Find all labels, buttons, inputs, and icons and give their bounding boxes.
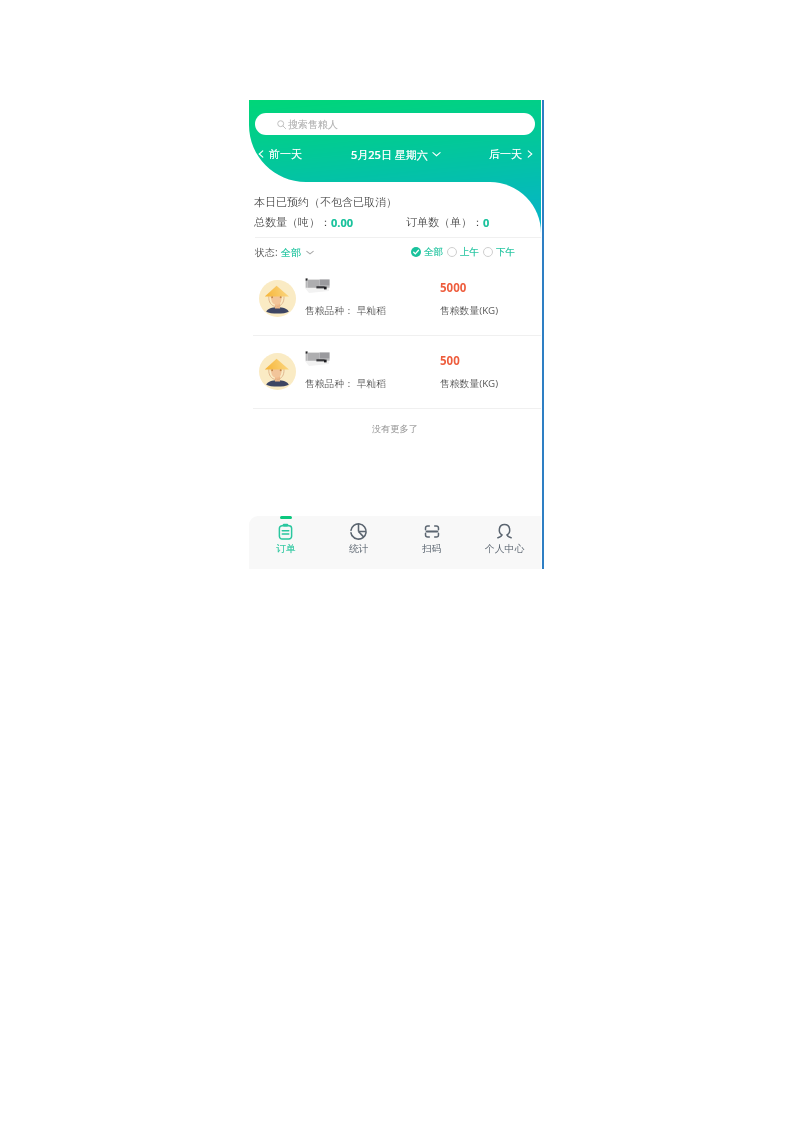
button[interactable]: 上午 (447, 246, 479, 258)
staticText: 扫码 (422, 543, 442, 555)
button[interactable]: 5月25日 星期六 (351, 146, 441, 162)
button[interactable]: 个人中心 (468, 516, 541, 569)
staticText: 订单数（单）： (406, 215, 483, 229)
button[interactable]: 前一天 (258, 146, 302, 162)
button[interactable]: 后一天 (489, 146, 533, 162)
staticText: 本日已预约（不包含已取消） (254, 195, 397, 209)
staticText: 总数量（吨）： (254, 215, 331, 229)
staticText: 5000 (440, 280, 467, 296)
button[interactable]: 下午 (483, 246, 515, 258)
staticText: 订单 (276, 543, 296, 555)
staticText: 上午 (460, 246, 479, 258)
staticText: 个人中心 (485, 543, 525, 555)
staticText: 没有更多了 (249, 423, 541, 435)
button[interactable]: 售粮品种： 早籼稻 (249, 267, 541, 337)
staticText: 售粮品种： 早籼稻 (305, 377, 386, 390)
staticText: 售粮品种： 早籼稻 (305, 304, 386, 317)
staticText: 下午 (496, 246, 515, 258)
button[interactable]: 搜索售粮人 (255, 113, 535, 135)
button[interactable]: 统计 (322, 516, 395, 569)
button[interactable]: 售粮品种： 早籼稻 (249, 340, 541, 410)
staticText: 0 (483, 215, 490, 230)
button[interactable]: 全部 (411, 246, 443, 258)
staticText: 后一天 (489, 147, 522, 161)
staticText: 状态: (255, 245, 278, 259)
staticText: 前一天 (269, 147, 302, 161)
staticText: 售粮数量(KG) (440, 304, 499, 317)
staticText: 5月25日 星期六 (351, 147, 428, 162)
button[interactable]: 状态: (255, 245, 314, 259)
staticText: 500 (440, 353, 460, 369)
staticText: 搜索售粮人 (288, 118, 338, 131)
button[interactable]: 订单 (249, 516, 322, 569)
staticText: 售粮数量(KG) (440, 377, 499, 390)
button[interactable]: 扫码 (395, 516, 468, 569)
staticText: 全部 (281, 246, 301, 259)
staticText: 统计 (349, 543, 369, 555)
staticText: 全部 (424, 246, 443, 258)
staticText: 0.00 (331, 215, 353, 230)
